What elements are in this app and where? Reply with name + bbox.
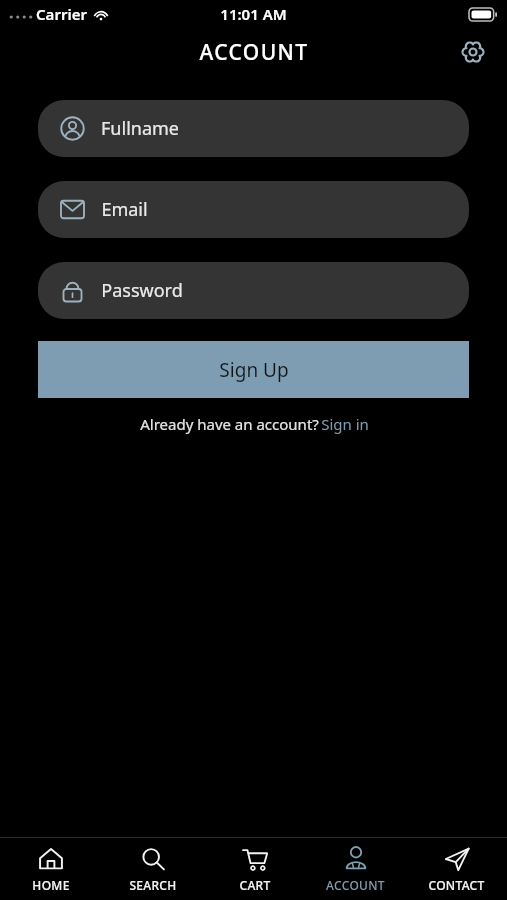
button[interactable]: Password — [38, 262, 469, 319]
button[interactable]: Sign Up — [38, 341, 469, 398]
button[interactable]: CONTACT — [406, 838, 507, 900]
staticText: Sign in — [321, 414, 369, 434]
staticText: ACCOUNT — [326, 877, 385, 893]
staticText: HOME — [32, 877, 70, 893]
button[interactable]: CART — [204, 838, 305, 900]
staticText: CONTACT — [428, 877, 485, 893]
button[interactable]: HOME — [0, 838, 102, 900]
button[interactable]: Settings — [453, 32, 493, 72]
button[interactable]: ACCOUNT — [305, 838, 406, 900]
staticText: 11:01 AM — [220, 4, 287, 24]
staticText: Already have an account? — [138, 414, 321, 434]
staticText: SEARCH — [129, 877, 177, 893]
staticText: ACCOUNT — [199, 38, 309, 67]
button[interactable]: Email — [38, 181, 469, 238]
staticText: Password — [101, 278, 183, 303]
button[interactable]: Sign in — [321, 414, 369, 434]
button[interactable]: Fullname — [38, 100, 469, 157]
button[interactable]: SEARCH — [102, 838, 204, 900]
staticText: Fullname — [101, 116, 179, 141]
staticText: Email — [101, 197, 148, 222]
staticText: Sign Up — [219, 357, 289, 383]
staticText: Carrier — [36, 4, 87, 24]
staticText: CART — [239, 877, 271, 893]
